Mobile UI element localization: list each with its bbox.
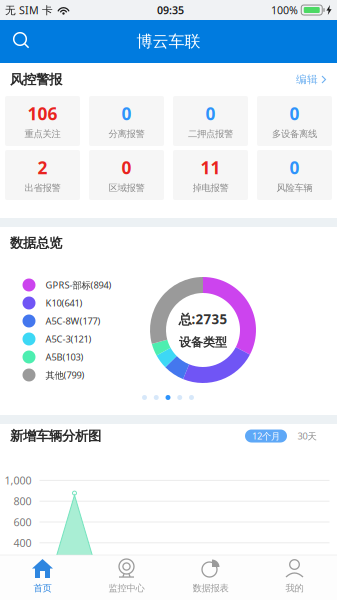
staticText: 我的	[285, 582, 303, 594]
staticText: 600	[13, 515, 31, 529]
staticText: 400	[13, 536, 31, 550]
staticText: 区域报警	[108, 182, 144, 194]
staticText: 0	[121, 156, 131, 179]
staticText: 无 SIM 卡	[5, 3, 53, 17]
staticText: 博云车联	[136, 32, 200, 51]
staticText: 风险车辆	[276, 182, 312, 194]
staticText: 编辑	[296, 73, 318, 86]
staticText: 数据总览	[10, 235, 62, 251]
staticText: 风控警报	[10, 71, 62, 88]
staticText: 二押点报警	[188, 128, 233, 140]
staticText: 其他(799)	[45, 369, 84, 381]
staticText: 设备类型	[179, 335, 227, 350]
button[interactable]: 2	[5, 150, 80, 200]
staticText: 掉电报警	[192, 182, 228, 194]
button[interactable]: 0	[257, 96, 332, 146]
staticText: 106	[27, 102, 57, 125]
button[interactable]: 0	[89, 150, 164, 200]
staticText: 1,000	[4, 473, 31, 487]
staticText: 首页	[33, 582, 51, 594]
button[interactable]: 30天	[292, 429, 322, 442]
staticText: 重点关注	[24, 128, 60, 140]
button[interactable]: 我的	[252, 555, 336, 600]
staticText: 800	[13, 494, 31, 508]
button[interactable]: 0	[173, 96, 248, 146]
staticText: 分离报警	[108, 128, 144, 140]
button[interactable]: 106	[5, 96, 80, 146]
button[interactable]: 11	[173, 150, 248, 200]
button[interactable]: 首页	[0, 555, 84, 600]
button[interactable]: 搜索	[7, 26, 37, 56]
staticText: A5B(103)	[45, 351, 83, 363]
button[interactable]: 数据报表	[168, 555, 252, 600]
staticText: 11	[200, 156, 220, 179]
button[interactable]: 监控中心	[84, 555, 168, 600]
staticText: K10(641)	[45, 297, 82, 309]
staticText: 出省报警	[24, 182, 60, 194]
staticText: 0	[121, 102, 131, 125]
staticText: 30天	[297, 430, 316, 442]
staticText: A5C-3(121)	[45, 333, 91, 345]
staticText: 新增车辆分析图	[10, 428, 101, 444]
staticText: 总:2735	[178, 310, 227, 328]
staticText: GPRS-部标(894)	[45, 279, 111, 291]
staticText: 0	[205, 102, 215, 125]
staticText: 0	[289, 102, 299, 125]
staticText: A5C-8W(177)	[45, 315, 100, 327]
staticText: 2	[37, 156, 47, 179]
staticText: 数据报表	[192, 582, 228, 594]
staticText: 12个月	[252, 430, 280, 442]
staticText: 监控中心	[108, 582, 144, 594]
button[interactable]: 0	[89, 96, 164, 146]
button[interactable]: 编辑	[292, 68, 331, 91]
button[interactable]: 12个月	[245, 429, 287, 442]
staticText: 多设备离线	[272, 128, 317, 140]
staticText: 100%	[271, 3, 298, 17]
staticText: 0	[289, 156, 299, 179]
staticText: 09:35	[157, 3, 184, 17]
button[interactable]: 0	[257, 150, 332, 200]
